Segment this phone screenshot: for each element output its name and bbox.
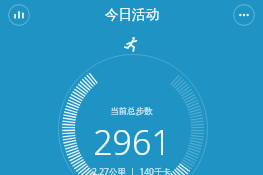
staticText: 2.27公里 | 140千卡 [92,166,171,175]
staticText: 当前总步数 [110,106,153,117]
button[interactable]: 统计 [8,4,30,26]
staticText: 2961 [93,119,171,165]
staticText: 今日活动 [105,6,159,23]
button[interactable]: 更多 [233,4,255,26]
